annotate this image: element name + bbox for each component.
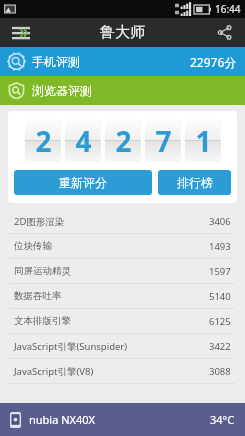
button[interactable]: JavaScript引擎(Sunspider) (0, 334, 245, 358)
button[interactable]: 2D图形渲染 (0, 209, 245, 233)
staticText: 鲁大师 (100, 23, 145, 42)
staticText: 7 (155, 122, 172, 160)
staticText: 3406 (209, 215, 231, 228)
staticText: 34°C (210, 412, 235, 427)
staticText: 2 (35, 122, 52, 160)
button[interactable]: 位块传输 (0, 234, 245, 258)
button[interactable]: 数据吞吐率 (0, 284, 245, 308)
staticText: 6125 (209, 315, 231, 328)
button[interactable]: 手机评测 (0, 47, 245, 76)
staticText: 1597 (209, 265, 231, 278)
staticText: 同屏运动精灵 (14, 265, 71, 277)
staticText: 2D图形渲染 (14, 215, 65, 228)
staticText: 手机评测 (32, 54, 80, 69)
button[interactable]: 浏览器评测 (0, 76, 245, 105)
button[interactable]: Share (209, 18, 239, 47)
staticText: JavaScript引擎(V8) (14, 365, 94, 378)
staticText: 文本排版引擎 (14, 315, 71, 327)
staticText: 4 (75, 122, 92, 160)
button[interactable]: nubia NX40X (0, 403, 245, 436)
staticText: 5140 (209, 290, 231, 303)
button[interactable]: Menu (6, 18, 36, 47)
staticText: 3422 (209, 340, 231, 353)
button[interactable]: 同屏运动精灵 (0, 259, 245, 283)
staticText: 3088 (209, 365, 231, 378)
staticText: 浏览器评测 (32, 83, 92, 98)
staticText: JavaScript引擎(Sunspider) (14, 340, 128, 353)
staticText: nubia NX40X (29, 412, 96, 427)
staticText: 2 (115, 122, 132, 160)
button[interactable]: 文本排版引擎 (0, 309, 245, 333)
staticText: 16:44 (215, 2, 241, 16)
staticText: 重新评分 (59, 175, 107, 190)
staticText: 位块传输 (14, 240, 52, 252)
staticText: 22976分 (190, 54, 237, 70)
staticText: 数据吞吐率 (14, 290, 62, 302)
button[interactable]: JavaScript引擎(V8) (0, 359, 245, 383)
staticText: 1 (195, 122, 212, 160)
button[interactable]: 排行榜 (158, 170, 231, 195)
staticText: 排行榜 (177, 175, 213, 190)
staticText: 1493 (209, 240, 231, 253)
button[interactable]: 重新评分 (14, 170, 152, 195)
